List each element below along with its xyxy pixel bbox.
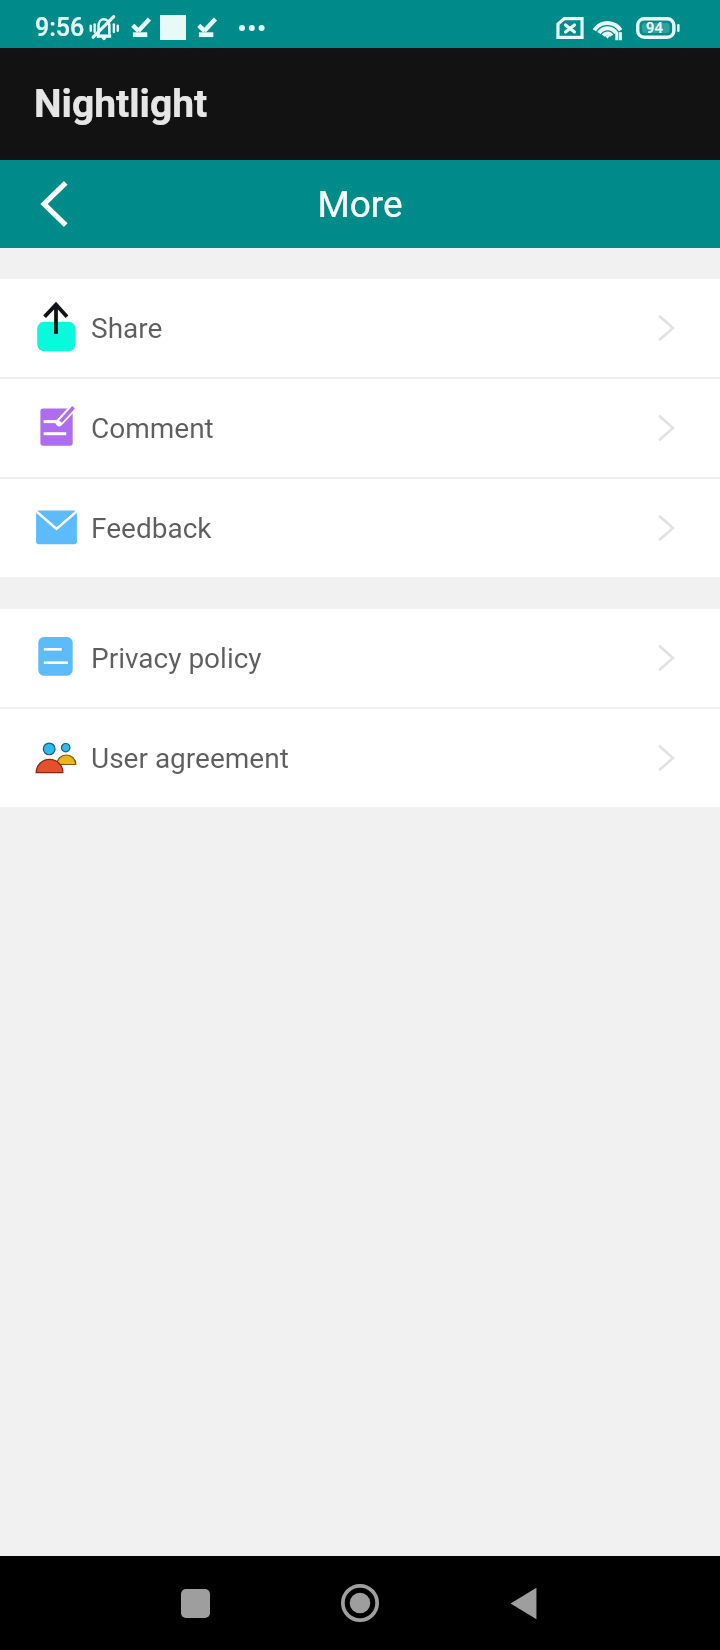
staticText: Nightlight (34, 81, 208, 127)
staticText: 94 (646, 19, 664, 37)
button[interactable]: User agreement (0, 709, 720, 807)
button[interactable]: Privacy policy (0, 609, 720, 707)
button[interactable]: Feedback (0, 479, 720, 577)
staticText: Privacy policy (91, 642, 262, 675)
staticText: 9:56 (35, 13, 85, 42)
staticText: Share (91, 312, 163, 345)
staticText: Comment (91, 412, 214, 445)
staticText: User agreement (91, 742, 289, 775)
button[interactable]: Share (0, 279, 720, 377)
staticText: Feedback (91, 512, 212, 545)
button[interactable]: Back (483, 1563, 563, 1643)
button[interactable]: Back (10, 160, 98, 248)
button[interactable]: Home (320, 1563, 400, 1643)
button[interactable]: Comment (0, 379, 720, 477)
button[interactable]: Recents (155, 1563, 235, 1643)
staticText: More (317, 183, 403, 226)
